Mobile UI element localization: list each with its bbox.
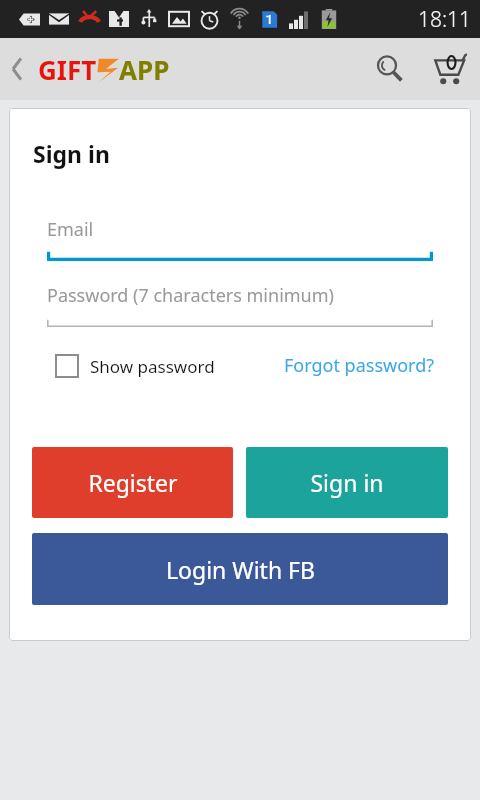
staticText: Sign in [310,467,384,498]
button[interactable]: Search [362,38,418,100]
staticText: GIFT [38,52,97,87]
button[interactable]: Back [0,38,34,100]
button[interactable]: Register [32,447,233,518]
button[interactable]: Show password [55,354,215,378]
button[interactable]: Forgot password? [284,353,435,378]
staticText: Register [88,467,178,498]
staticText: Show password [90,355,215,378]
staticText: 18:11 [418,5,472,34]
staticText: Login With FB [166,554,315,585]
button[interactable]: Cart, 0 items [418,38,480,100]
staticText: Sign in [33,138,110,169]
button[interactable]: Login With FB [32,533,448,605]
staticText: Forgot password? [284,353,435,378]
staticText: APP [119,52,170,87]
staticText: Password (7 characters minimum) [47,283,334,308]
staticText: Email [47,217,94,242]
button[interactable]: Sign in [246,447,448,518]
